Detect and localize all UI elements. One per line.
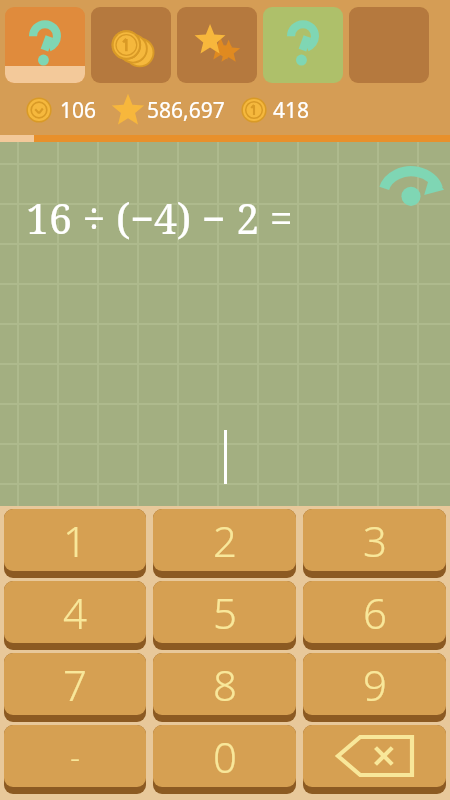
button[interactable]: 8: [153, 653, 296, 715]
button[interactable]: 2: [153, 509, 296, 571]
button[interactable]: Hint: [378, 162, 444, 228]
staticText: 2: [213, 512, 237, 569]
button[interactable]: 9: [303, 653, 446, 715]
button[interactable]: 6: [303, 581, 446, 643]
button[interactable]: 3: [303, 509, 446, 571]
button[interactable]: 4: [4, 581, 146, 643]
button[interactable]: 5: [153, 581, 296, 643]
staticText: 0: [213, 728, 237, 785]
button[interactable]: -: [4, 725, 146, 787]
button[interactable]: Tile: [5, 7, 85, 83]
staticText: 3: [363, 512, 387, 569]
staticText: 4: [63, 584, 87, 641]
button[interactable]: Tile: [263, 7, 343, 83]
button[interactable]: Tile: [177, 7, 257, 83]
staticText: 418: [273, 96, 310, 125]
staticText: 8: [213, 656, 237, 713]
staticText: 6: [363, 584, 387, 641]
button[interactable]: Backspace: [303, 725, 446, 787]
staticText: 1: [63, 512, 87, 569]
staticText: -: [70, 736, 80, 777]
button[interactable]: Tile: [91, 7, 171, 83]
staticText: 16 ÷ (−4) − 2 =: [26, 190, 293, 246]
button[interactable]: 1: [4, 509, 146, 571]
button[interactable]: 0: [153, 725, 296, 787]
staticText: 5: [213, 584, 237, 641]
staticText: 7: [63, 656, 87, 713]
button[interactable]: 7: [4, 653, 146, 715]
staticText: 106: [60, 96, 97, 125]
staticText: 9: [363, 656, 387, 713]
staticText: 586,697: [147, 96, 225, 125]
button[interactable]: Tile: [349, 7, 429, 83]
